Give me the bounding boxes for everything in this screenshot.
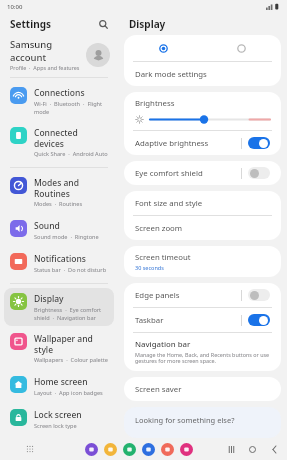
button[interactable]: Messages — [142, 443, 155, 456]
button[interactable]: Contacts — [161, 443, 174, 456]
button[interactable]: Off — [248, 289, 270, 301]
button[interactable]: Modes and Routines — [4, 172, 114, 213]
button[interactable]: Internet — [85, 443, 98, 456]
staticText: Wi-Fi · Bluetooth · Flight mode — [34, 100, 108, 115]
button[interactable]: Taskbar — [124, 308, 281, 332]
staticText: Samsung account — [10, 38, 86, 63]
staticText: Quick Share · Android Auto — [34, 150, 108, 158]
staticText: Sound mode · Ringtone — [34, 233, 99, 241]
staticText: Home screen — [34, 376, 88, 388]
staticText: Layout · App icon badges — [34, 389, 103, 397]
button[interactable]: Off — [248, 167, 270, 179]
staticText: Looking for something else? — [135, 415, 235, 425]
button[interactable]: Edge panels — [124, 283, 281, 307]
button[interactable]: Phone — [123, 443, 136, 456]
button[interactable]: Search — [96, 17, 110, 31]
staticText: Screen lock type — [34, 422, 77, 430]
staticText: Adaptive brightness — [135, 138, 209, 149]
staticText: Notifications — [34, 253, 86, 265]
button[interactable]: Wallpaper and style — [4, 328, 114, 369]
button[interactable]: Adaptive brightness — [124, 131, 281, 155]
button[interactable]: Navigation bar — [124, 333, 281, 371]
button[interactable]: Gallery — [104, 443, 117, 456]
staticText: Eye comfort shield — [135, 168, 203, 179]
button[interactable]: Font size and style — [124, 191, 281, 215]
button[interactable]: Sound — [4, 215, 114, 246]
staticText: 30 seconds — [135, 264, 164, 271]
button[interactable]: Dark mode settings — [124, 62, 281, 86]
staticText: 10:00 — [7, 3, 23, 11]
staticText: Connections — [34, 87, 85, 99]
button[interactable]: Dark — [202, 35, 281, 61]
staticText: Font size and style — [135, 198, 203, 209]
staticText: Screen timeout — [135, 252, 191, 263]
staticText: Dark mode settings — [135, 69, 207, 80]
staticText: Profile · Apps and features — [10, 64, 80, 71]
button[interactable]: On — [248, 137, 270, 149]
staticText: Brightness — [135, 98, 175, 109]
button[interactable]: Screen timeout — [124, 246, 281, 277]
staticText: Manage the Home, Back, and Recents butto… — [135, 351, 270, 365]
button[interactable]: Lock screen — [4, 404, 114, 435]
button[interactable]: On — [248, 314, 270, 326]
button[interactable]: Home — [244, 441, 260, 457]
staticText: Settings — [10, 17, 96, 31]
staticText: Brightness · Eye comfort shield · Naviga… — [34, 306, 108, 321]
staticText: Screen zoom — [135, 223, 183, 234]
staticText: Screen saver — [135, 384, 182, 395]
button[interactable]: Connections — [4, 82, 114, 120]
staticText: Navigation bar — [135, 339, 191, 350]
button[interactable]: Light — [124, 35, 202, 61]
staticText: Sound — [34, 220, 60, 232]
staticText: Wallpaper and style — [34, 333, 108, 355]
button[interactable]: Recents — [223, 441, 239, 457]
button[interactable]: Camera — [180, 443, 193, 456]
staticText: Edge panels — [135, 290, 180, 301]
staticText: Lock screen — [34, 409, 82, 421]
button[interactable]: Notifications — [4, 248, 114, 279]
button[interactable]: Eye comfort shield — [124, 161, 281, 185]
staticText: Modes · Routines — [34, 200, 83, 208]
staticText: Taskbar — [135, 315, 164, 326]
button[interactable]: Screen saver — [124, 377, 281, 401]
button[interactable]: Display — [4, 288, 114, 326]
staticText: Connected devices — [34, 127, 108, 149]
button[interactable]: Screen zoom — [124, 216, 281, 240]
staticText: Wallpapers · Colour palette — [34, 356, 108, 364]
button[interactable]: Connected devices — [4, 122, 114, 163]
button[interactable]: Back — [266, 441, 282, 457]
staticText: Modes and Routines — [34, 177, 108, 199]
button[interactable]: Samsung account — [0, 35, 118, 77]
staticText: Status bar · Do not disturb — [34, 266, 107, 274]
button[interactable]: Apps — [0, 438, 60, 460]
staticText: Display — [34, 293, 64, 305]
staticText: Display — [129, 17, 166, 31]
button[interactable]: Home screen — [4, 371, 114, 402]
